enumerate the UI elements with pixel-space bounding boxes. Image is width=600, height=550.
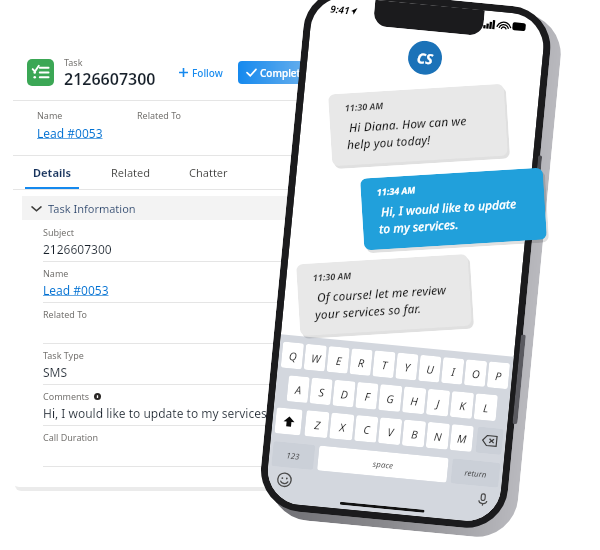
staticText: Comments: [43, 390, 90, 402]
staticText: Chatter: [189, 165, 228, 180]
staticText: help you today!: [347, 131, 431, 152]
button[interactable]: H: [402, 386, 426, 414]
staticText: 11:30 AM: [344, 99, 384, 113]
button[interactable]: space: [317, 445, 449, 483]
button[interactable]: Edit Task Type: [330, 365, 345, 380]
staticText: Related To: [137, 109, 182, 121]
staticText: N: [433, 428, 442, 444]
button[interactable]: K: [450, 391, 474, 419]
button[interactable]: U: [418, 355, 441, 383]
button[interactable]: Details: [13, 156, 91, 189]
button[interactable]: Y: [395, 352, 419, 380]
button[interactable]: Dictate: [475, 492, 491, 507]
staticText: Call Duration: [43, 431, 99, 443]
button[interactable]: E: [326, 346, 350, 374]
staticText: Task: [64, 56, 83, 68]
staticText: Task Information: [48, 201, 136, 216]
staticText: S: [318, 384, 325, 400]
button[interactable]: 11:30 AM: [328, 84, 508, 166]
button[interactable]: 11:34 AM: [360, 167, 547, 250]
button[interactable]: R: [349, 348, 373, 376]
staticText: Lead #0053: [43, 282, 109, 298]
button[interactable]: D: [332, 380, 356, 407]
button[interactable]: Key: [274, 407, 303, 436]
button[interactable]: F: [355, 382, 379, 410]
staticText: CS: [416, 48, 435, 69]
button[interactable]: I: [441, 357, 464, 385]
staticText: E: [335, 353, 342, 368]
button[interactable]: Lead #0053: [37, 125, 103, 141]
button[interactable]: V: [378, 417, 402, 445]
staticText: Of course! let me review: [316, 281, 447, 305]
button[interactable]: M: [450, 424, 474, 452]
button[interactable]: W: [304, 344, 327, 372]
staticText: Related To: [43, 308, 88, 320]
button[interactable]: Z: [304, 410, 330, 438]
button[interactable]: Key: [475, 427, 504, 455]
button[interactable]: J: [426, 389, 450, 417]
staticText: I: [450, 364, 456, 379]
button[interactable]: C: [354, 415, 378, 443]
button[interactable]: P: [487, 361, 510, 389]
staticText: T: [381, 357, 388, 373]
button[interactable]: O: [464, 359, 487, 387]
button[interactable]: 123: [271, 441, 315, 470]
staticText: F: [364, 389, 371, 404]
button[interactable]: return: [450, 458, 501, 488]
button[interactable]: Emoji: [276, 472, 293, 488]
staticText: U: [425, 361, 435, 377]
staticText: return: [464, 466, 488, 480]
staticText: C: [362, 422, 371, 437]
staticText: space: [372, 458, 394, 471]
button[interactable]: 11:30 AM: [296, 254, 472, 336]
staticText: W: [310, 350, 321, 366]
staticText: K: [458, 398, 467, 413]
button[interactable]: Edit Comments: [330, 406, 345, 421]
staticText: Task Type: [43, 349, 84, 361]
button[interactable]: Related: [91, 156, 169, 189]
button[interactable]: G: [378, 384, 402, 412]
staticText: O: [471, 366, 481, 381]
button[interactable]: X: [329, 412, 354, 441]
staticText: Y: [404, 359, 411, 375]
button[interactable]: Edit Name: [330, 283, 345, 298]
staticText: 11:30 AM: [312, 269, 352, 283]
staticText: Hi Diana. How can we: [348, 112, 467, 135]
staticText: Follow: [192, 66, 223, 80]
staticText: V: [386, 424, 395, 439]
staticText: 2126607300: [64, 68, 156, 90]
button[interactable]: N: [426, 422, 450, 450]
button[interactable]: B: [402, 419, 426, 447]
button[interactable]: Task Information: [32, 196, 356, 220]
staticText: to my services.: [379, 216, 459, 237]
staticText: A: [294, 382, 302, 397]
staticText: H: [409, 393, 419, 409]
button[interactable]: A: [286, 375, 310, 403]
staticText: 2126607300: [43, 241, 112, 257]
button[interactable]: T: [372, 350, 396, 378]
staticText: Completed: [260, 66, 313, 80]
staticText: 11:34 AM: [376, 183, 416, 198]
staticText: Hi, I would like to update: [380, 195, 517, 219]
staticText: J: [435, 395, 441, 411]
staticText: SMS: [43, 364, 68, 380]
staticText: Z: [314, 417, 321, 432]
button[interactable]: L: [474, 393, 498, 421]
staticText: M: [456, 431, 467, 446]
staticText: L: [482, 400, 489, 415]
staticText: Details: [33, 165, 72, 180]
button[interactable]: Chatter: [169, 156, 247, 189]
staticText: Q: [288, 348, 297, 364]
staticText: D: [340, 386, 349, 402]
staticText: 9:41: [330, 1, 351, 17]
staticText: G: [385, 391, 395, 406]
button[interactable]: Completed: [247, 61, 313, 84]
button[interactable]: S: [309, 377, 333, 405]
button[interactable]: Q: [281, 341, 304, 369]
button[interactable]: Edit Related To: [330, 324, 345, 339]
staticText: P: [494, 368, 503, 384]
button[interactable]: Follow: [179, 61, 223, 84]
